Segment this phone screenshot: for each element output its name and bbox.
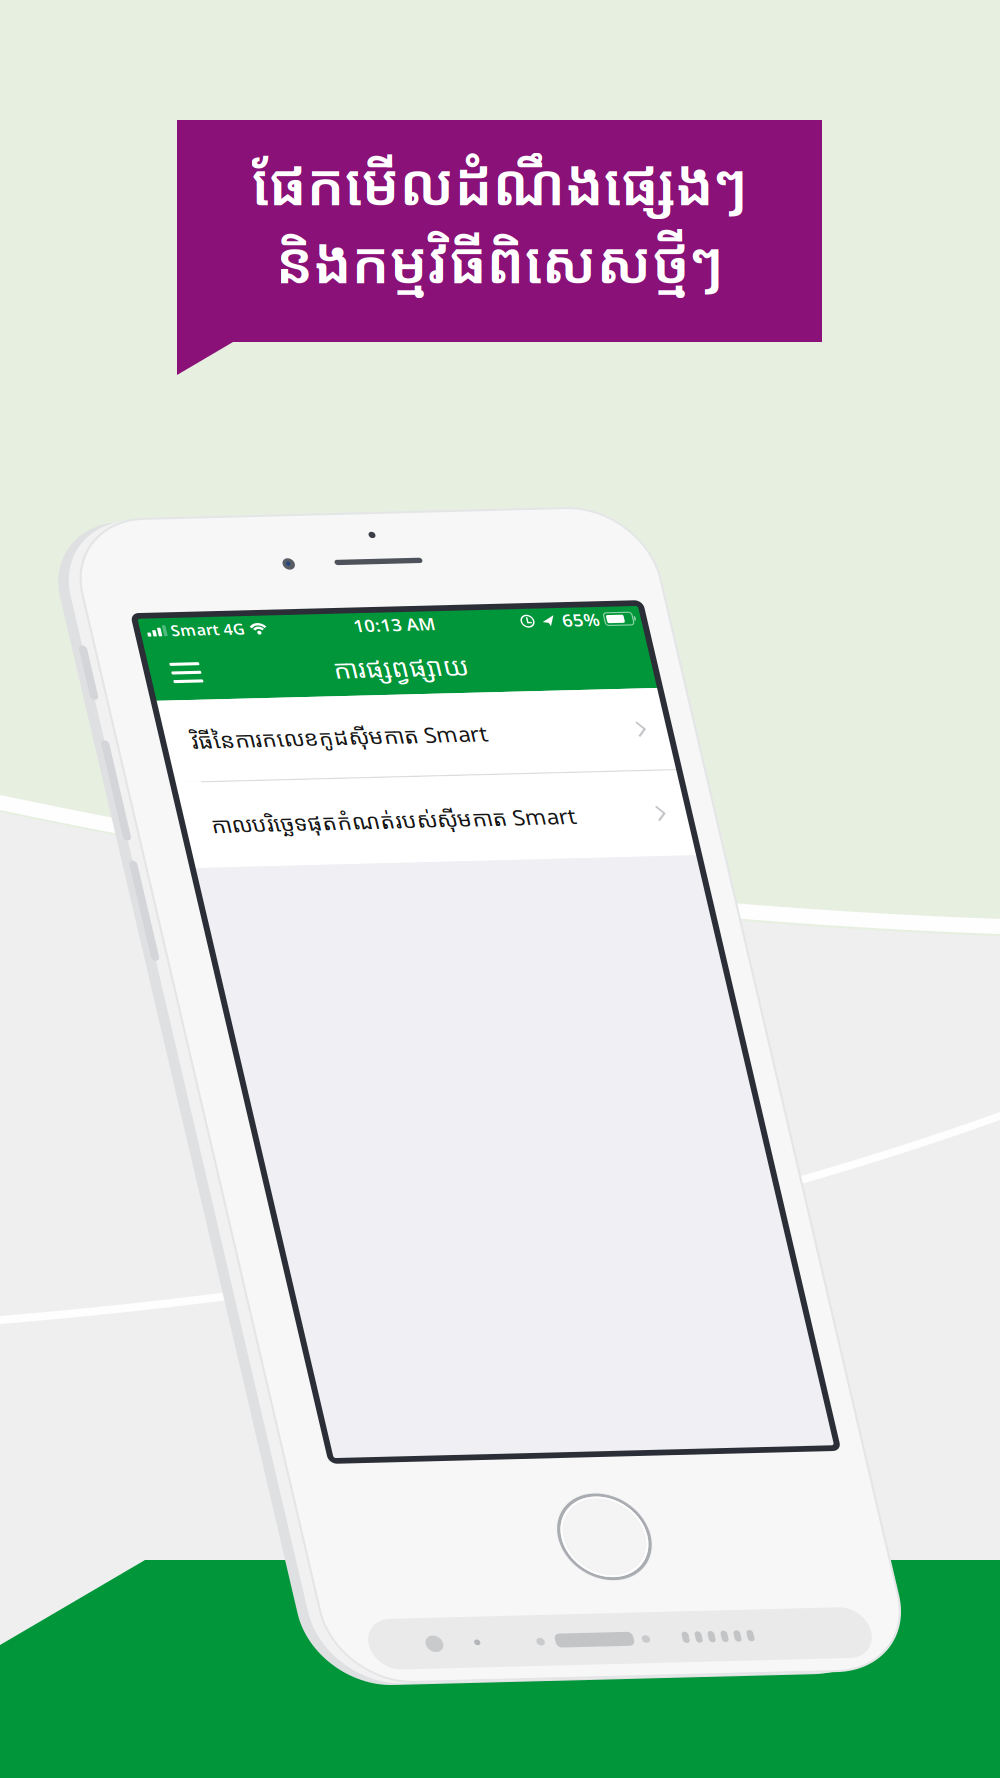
button[interactable]: កាលបរិច្ឆេទផុតកំណត់របស់ស៊ីមកាត Smart bbox=[34, 208, 409, 275]
staticText: និងកម្មវិធីពិសេសថ្មីៗ bbox=[275, 222, 723, 300]
staticText: កាលបរិច្ឆេទផុតកំណត់របស់ស៊ីមកាត Smart bbox=[55, 230, 325, 253]
staticText: ការផ្សព្វផ្សាយ bbox=[171, 108, 271, 135]
button[interactable]: វិធីនៃការកលេខកូដស៊ីមកាត Smart bbox=[34, 143, 409, 207]
staticText: វិធីនៃការកលេខកូដស៊ីមកាត Smart bbox=[55, 164, 274, 186]
staticText: ផែកមើលដំណឹងផ្សេងៗ bbox=[251, 144, 747, 222]
